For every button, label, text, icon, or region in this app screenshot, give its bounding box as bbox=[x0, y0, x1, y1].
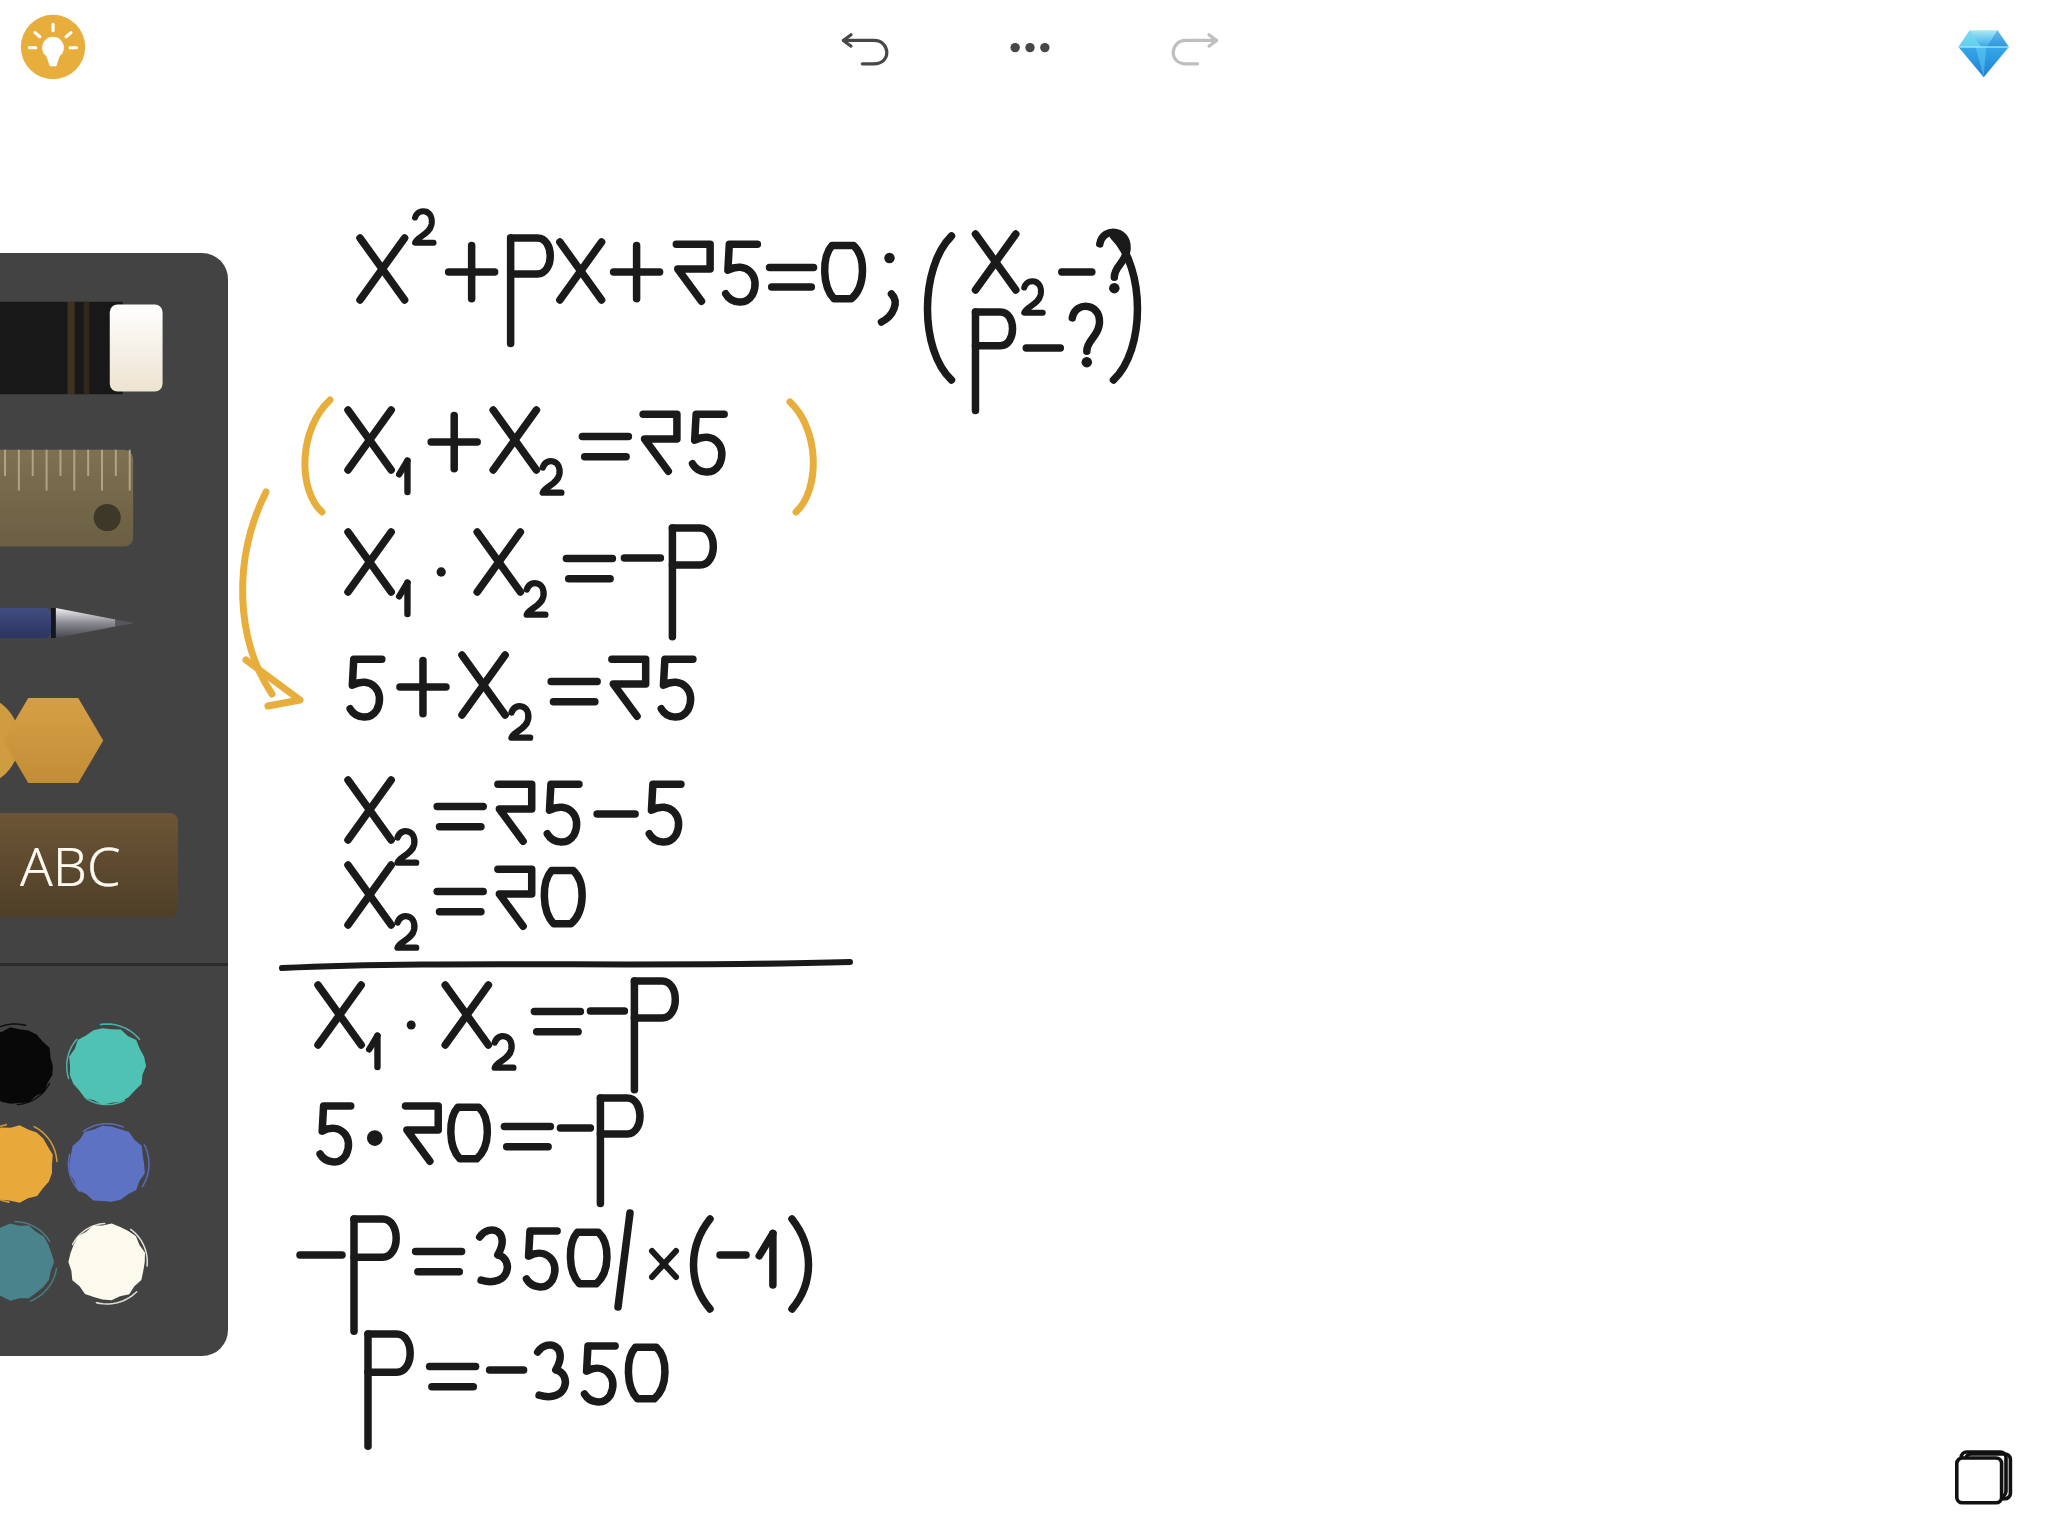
button[interactable]: Colour bbox=[64, 1023, 150, 1109]
button[interactable]: Colour bbox=[0, 1023, 58, 1109]
button[interactable]: Colour bbox=[0, 1219, 58, 1305]
button[interactable]: Colour bbox=[64, 1121, 150, 1207]
button[interactable]: Ruler bbox=[0, 438, 182, 556]
button[interactable]: Pen bbox=[0, 583, 182, 683]
button[interactable]: Shapes bbox=[0, 678, 182, 803]
button[interactable]: Premium bbox=[1940, 10, 2024, 94]
button[interactable]: More options bbox=[985, 8, 1075, 98]
button[interactable]: Colour bbox=[64, 1219, 150, 1305]
button[interactable]: Colour bbox=[0, 1121, 58, 1207]
staticText: ABC bbox=[20, 828, 121, 902]
button[interactable]: ABC bbox=[0, 813, 178, 917]
button[interactable]: Ideas bbox=[18, 12, 88, 82]
button[interactable]: Redo bbox=[1150, 8, 1240, 98]
button[interactable]: Undo bbox=[820, 8, 910, 98]
button[interactable]: Pages bbox=[1944, 1434, 2024, 1514]
button[interactable]: Eraser bbox=[0, 293, 180, 403]
